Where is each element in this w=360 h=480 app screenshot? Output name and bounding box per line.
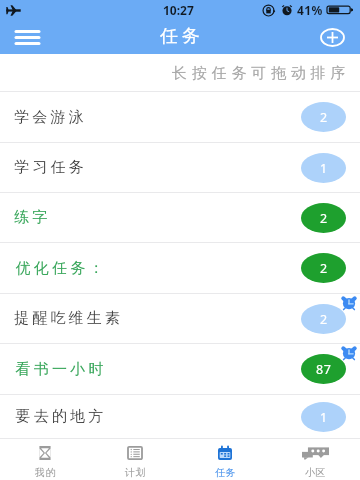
staticText: 87: [316, 361, 332, 378]
staticText: 2: [320, 109, 328, 126]
staticText: 练字: [14, 208, 51, 227]
staticText: 长按任务可拖动排序: [172, 64, 351, 83]
staticText: 计划: [125, 466, 146, 479]
button[interactable]: 计划: [90, 439, 180, 480]
staticText: 1: [320, 409, 328, 426]
staticText: 优化任务：: [14, 259, 105, 278]
staticText: 10:27: [163, 2, 194, 18]
staticText: 学会游泳: [14, 108, 87, 127]
button[interactable]: 学会游泳: [0, 92, 360, 143]
button[interactable]: 优化任务：: [0, 243, 360, 294]
staticText: 学习任务: [14, 158, 87, 177]
staticText: 任务: [215, 466, 236, 479]
staticText: 看书一小时: [14, 360, 105, 379]
button[interactable]: 学习任务: [0, 143, 360, 193]
staticText: 提醒吃维生素: [14, 309, 124, 328]
button[interactable]: Add task: [317, 22, 347, 52]
staticText: 2: [320, 260, 328, 277]
staticText: 小区: [305, 466, 326, 479]
button[interactable]: 看书一小时: [0, 344, 360, 395]
staticText: 2: [320, 311, 328, 328]
staticText: 1: [320, 160, 328, 177]
staticText: 任务: [160, 25, 204, 48]
staticText: 要去的地方: [14, 407, 105, 426]
staticText: 我的: [35, 466, 56, 479]
button[interactable]: 练字: [0, 193, 360, 243]
staticText: 41%: [297, 2, 323, 18]
button[interactable]: 小区: [270, 439, 360, 480]
staticText: 2: [320, 210, 328, 227]
button[interactable]: 提醒吃维生素: [0, 294, 360, 344]
button[interactable]: 我的: [0, 439, 90, 480]
button[interactable]: Menu: [11, 22, 43, 52]
button[interactable]: 要去的地方: [0, 395, 360, 438]
button[interactable]: 任务: [180, 439, 270, 480]
